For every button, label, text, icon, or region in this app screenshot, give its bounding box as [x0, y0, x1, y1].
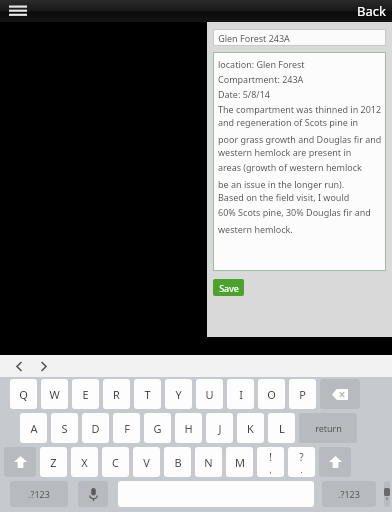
staticText: Back [357, 2, 386, 20]
button[interactable]: Y [165, 379, 192, 409]
button[interactable]: Previous [8, 355, 30, 377]
staticText: , [269, 464, 272, 475]
staticText: western hemlock are present in shaded [218, 146, 382, 161]
staticText: ? [299, 450, 304, 464]
button[interactable]: B [164, 447, 191, 477]
button[interactable]: P [289, 379, 316, 409]
staticText: The compartment was thinned in 2012 [218, 103, 382, 115]
staticText: E [82, 387, 89, 402]
staticText: Based on the field visit, I would estima… [218, 191, 382, 206]
button[interactable]: F [113, 413, 140, 443]
button[interactable]: D [82, 413, 109, 443]
button[interactable]: Next [32, 355, 54, 377]
staticText: N [204, 455, 213, 470]
button[interactable]: G [144, 413, 171, 443]
staticText: and regeneration of Scots pine in areas … [218, 116, 382, 131]
staticText: Z [50, 455, 57, 470]
staticText: . [300, 464, 303, 475]
button[interactable]: .?123 [10, 481, 68, 507]
button[interactable]: S [51, 413, 78, 443]
button[interactable]: ? [288, 447, 315, 477]
button[interactable]: M [226, 447, 253, 477]
button[interactable]: Shift [4, 447, 36, 477]
staticText: .?123 [338, 488, 360, 500]
other: Backspace [332, 389, 348, 400]
staticText: W [49, 387, 60, 402]
staticText: P [299, 387, 306, 402]
staticText: R [113, 387, 120, 402]
button[interactable]: O [258, 379, 285, 409]
button[interactable]: Back [357, 2, 386, 20]
staticText: L [279, 421, 285, 436]
button[interactable]: H [175, 413, 202, 443]
other: Shift right [329, 456, 342, 468]
staticText: C [112, 455, 119, 470]
staticText: western hemlock. [218, 223, 293, 235]
staticText: A [30, 421, 38, 436]
button[interactable]: T [134, 379, 161, 409]
button[interactable]: U [196, 379, 223, 409]
button[interactable]: R [103, 379, 130, 409]
staticText: K [247, 421, 254, 436]
staticText: T [144, 387, 151, 402]
staticText: H [184, 421, 193, 436]
staticText: be an issue in the longer run). [218, 178, 345, 190]
other: Voice input [89, 488, 98, 501]
button[interactable]: .?123 [322, 481, 376, 507]
staticText: Glen Forest 243A [218, 32, 290, 44]
staticText: Date: 5/8/14 [218, 88, 270, 100]
staticText: Y [175, 387, 182, 402]
button[interactable]: Menu [6, 1, 30, 21]
button[interactable]: Backspace [320, 379, 360, 409]
staticText: G [153, 421, 162, 436]
button[interactable]: L [268, 413, 295, 443]
button[interactable]: X [71, 447, 98, 477]
button[interactable]: Q [10, 379, 37, 409]
button[interactable]: Save [213, 279, 244, 296]
button[interactable]: V [133, 447, 160, 477]
button[interactable]: Hide keyboard [384, 481, 390, 507]
button[interactable]: J [206, 413, 233, 443]
staticText: location: Glen Forest [218, 58, 305, 70]
other: Shift [14, 456, 27, 468]
button[interactable]: E [72, 379, 99, 409]
staticText: areas (growth of western hemlock might [218, 161, 382, 176]
button[interactable]: Z [40, 447, 67, 477]
staticText: V [143, 455, 150, 470]
staticText: Save [219, 282, 239, 294]
button[interactable]: C [102, 447, 129, 477]
staticText: ! [269, 450, 272, 464]
staticText: poor grass growth and Douglas fir and [218, 133, 382, 145]
staticText: I [239, 387, 243, 402]
staticText: .?123 [28, 488, 50, 500]
staticText: Q [19, 387, 28, 402]
button[interactable]: A [20, 413, 47, 443]
button[interactable]: W [41, 379, 68, 409]
button[interactable]: location: Glen Forest [213, 52, 386, 271]
staticText: O [267, 387, 276, 402]
button[interactable]: K [237, 413, 264, 443]
other: Hide keyboard [384, 488, 390, 501]
staticText: S [61, 421, 68, 436]
button[interactable]: Glen Forest 243A [213, 29, 386, 46]
button[interactable]: ! [257, 447, 284, 477]
staticText: M [235, 455, 245, 470]
staticText: X [81, 455, 88, 470]
staticText: Compartment: 243A [218, 73, 304, 85]
button[interactable]: N [195, 447, 222, 477]
staticText: F [124, 421, 130, 436]
staticText: D [91, 421, 100, 436]
button[interactable]: Shift right [319, 447, 351, 477]
staticText: J [218, 421, 222, 436]
staticText: B [174, 455, 182, 470]
button[interactable]: I [227, 379, 254, 409]
staticText: 60% Scots pine, 30% Douglas fir and 10% [218, 206, 382, 221]
staticText: U [205, 387, 214, 402]
button[interactable]: return [299, 413, 357, 443]
button[interactable]: Voice input [78, 481, 108, 507]
staticText: return [315, 422, 342, 434]
